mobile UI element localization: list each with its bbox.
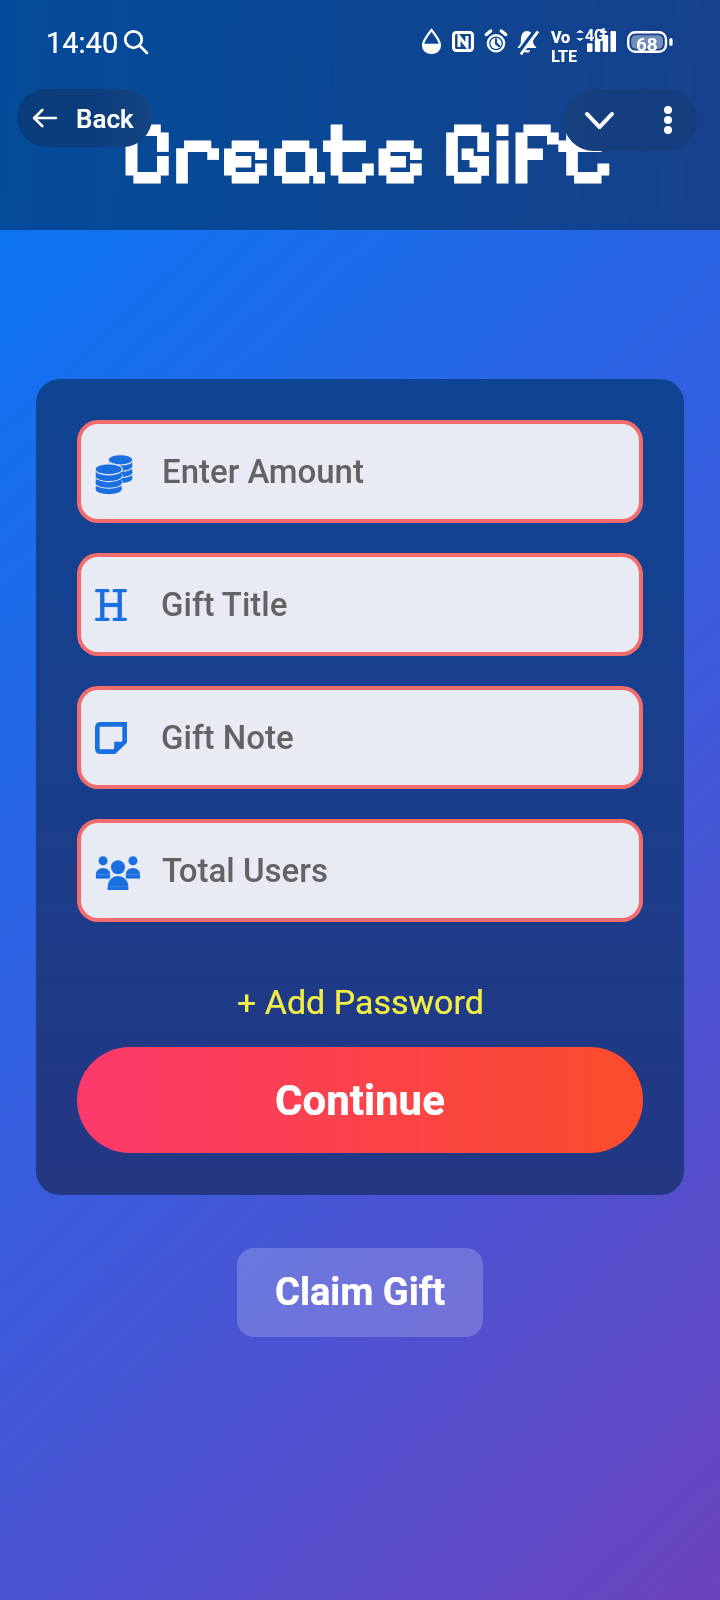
button[interactable]: Expand (563, 89, 643, 151)
staticText: 68 (636, 33, 658, 55)
staticText: Vo (551, 28, 571, 47)
button[interactable]: Back (17, 89, 152, 147)
staticText: Claim Gift (275, 1270, 446, 1315)
staticText: + (600, 24, 608, 39)
staticText: Back (76, 104, 134, 134)
staticText: Gift Note (161, 718, 294, 757)
button[interactable]: Enter Amount (81, 424, 639, 519)
staticText: Continue (275, 1076, 445, 1125)
staticText: Enter Amount (162, 452, 364, 491)
staticText: LTE (551, 47, 577, 66)
button[interactable]: Total Users (81, 823, 639, 918)
button[interactable]: Continue (77, 1047, 643, 1153)
staticText: + Add Password (237, 982, 484, 1022)
button[interactable]: Gift Title (81, 557, 639, 652)
button[interactable]: Gift Note (81, 690, 639, 785)
staticText: 14:40 (46, 26, 119, 60)
button[interactable]: More options (643, 89, 697, 151)
staticText: 4G (585, 26, 605, 45)
staticText: Gift Title (161, 585, 288, 624)
button[interactable]: + Add Password (77, 970, 643, 1034)
button[interactable]: Claim Gift (237, 1248, 483, 1337)
staticText: Total Users (162, 851, 328, 890)
staticText: Create Gift (122, 102, 613, 205)
